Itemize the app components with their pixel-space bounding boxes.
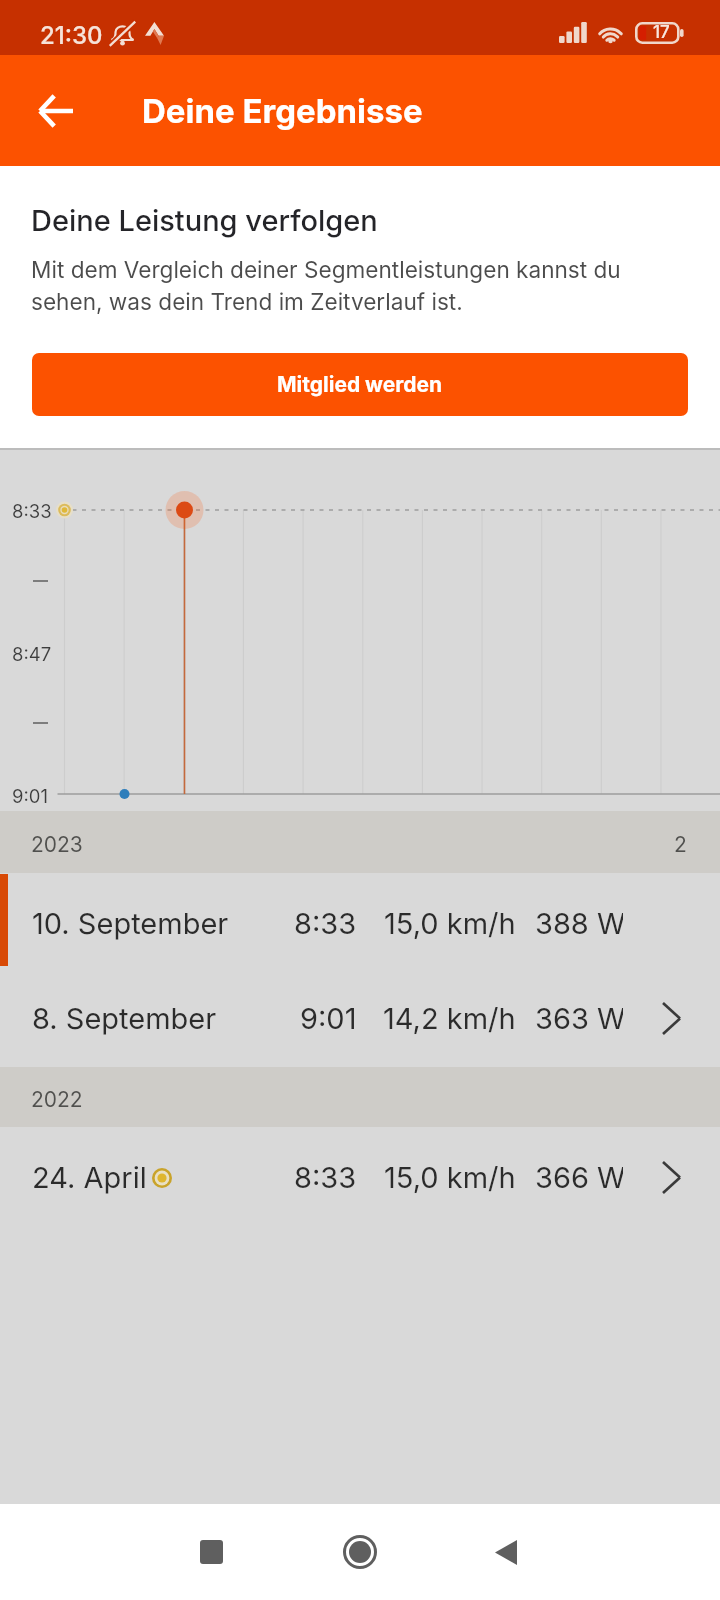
staticText: 2023 (31, 832, 83, 857)
staticText: 17 (653, 22, 670, 43)
staticText: Deine Ergebnisse (142, 91, 423, 131)
staticText: Deine Leistung verfolgen (31, 203, 378, 238)
staticText: 363 W (535, 1001, 623, 1036)
staticText: 8:33 (12, 500, 52, 522)
staticText: 2 (674, 832, 687, 857)
staticText: 2022 (31, 1087, 83, 1112)
staticText: 10. September (32, 906, 229, 941)
staticText: 8:33 (294, 1160, 357, 1195)
staticText: 24. April (32, 1160, 147, 1195)
staticText: Mitglied werden (277, 372, 443, 397)
staticText: Mit dem Vergleich deiner Segmentleistung… (31, 256, 621, 315)
button[interactable]: Back (22, 77, 90, 145)
staticText: 9:01 (12, 785, 48, 807)
staticText: 8. September (32, 1001, 217, 1036)
button[interactable]: Mitglied werden (32, 353, 688, 416)
button[interactable]: Home (330, 1522, 390, 1582)
button[interactable]: 24. April (0, 1127, 720, 1225)
staticText: 15,0 km/h (384, 1160, 516, 1195)
staticText: 21:30 (40, 21, 103, 50)
staticText: 15,0 km/h (384, 906, 516, 941)
staticText: 9:01 (300, 1001, 357, 1036)
staticText: 8:33 (294, 906, 357, 941)
staticText: 14,2 km/h (383, 1001, 516, 1036)
staticText: 388 W (535, 906, 623, 941)
button[interactable]: 10. September (0, 873, 720, 968)
staticText: 366 W (535, 1160, 623, 1195)
button[interactable]: Recents (181, 1522, 241, 1582)
button[interactable]: 8. September (0, 968, 720, 1067)
button[interactable]: Back (476, 1522, 536, 1582)
staticText: 8:47 (12, 643, 52, 665)
